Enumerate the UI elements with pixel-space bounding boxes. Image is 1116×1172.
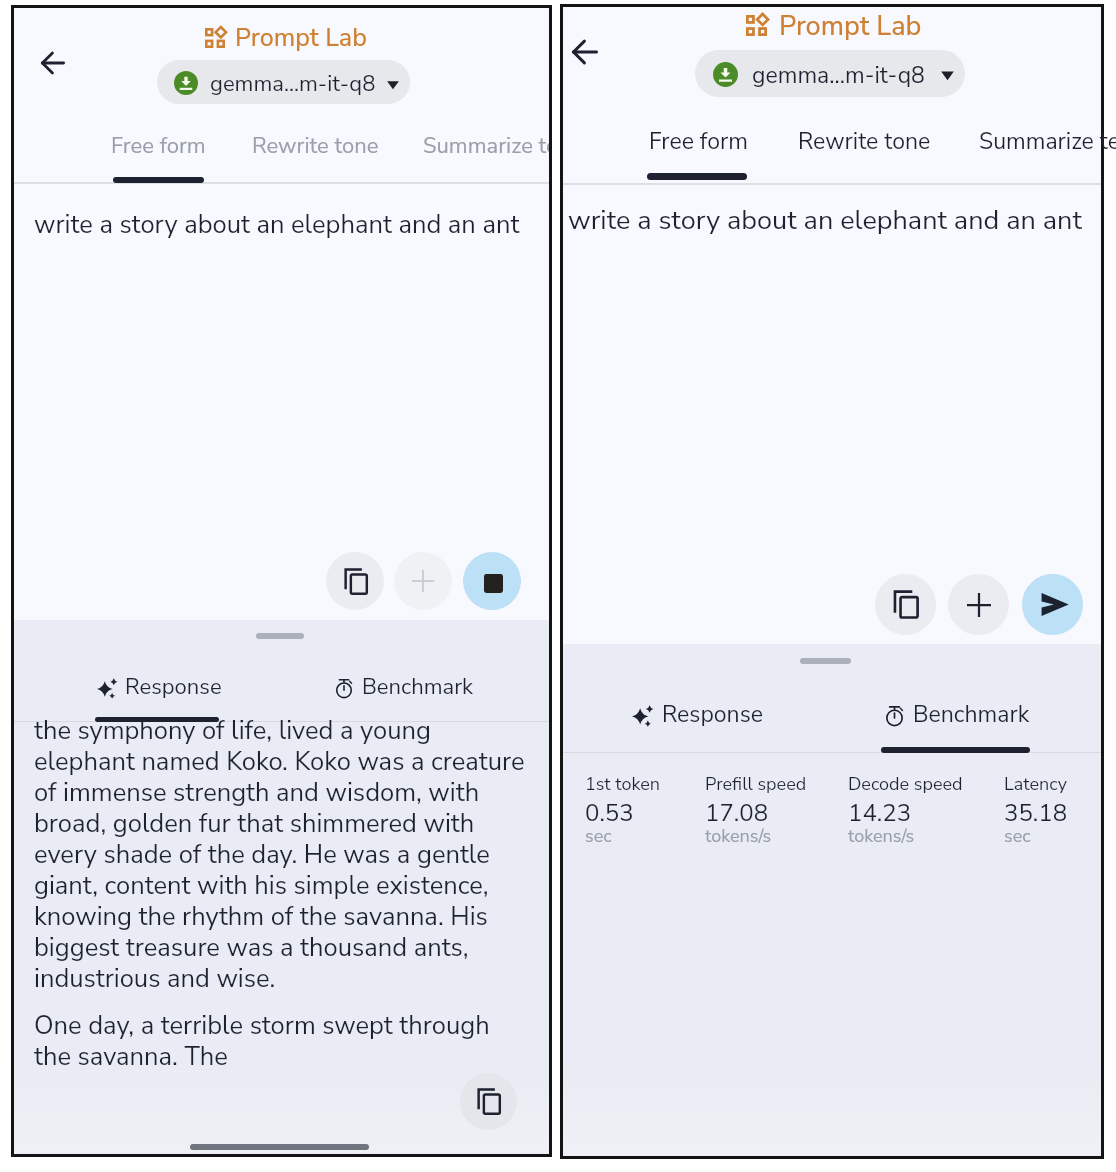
staticText: Summarize text <box>423 131 549 161</box>
staticText: Prefill speed <box>705 772 807 797</box>
button[interactable]: Benchmark tab <box>884 699 1030 730</box>
staticText: tokens/s <box>848 824 915 849</box>
button[interactable]: Summarize text <box>421 125 549 167</box>
staticText: 35.18 <box>1004 797 1068 830</box>
button[interactable]: Response tab <box>632 699 763 730</box>
staticText: Latency <box>1004 772 1067 797</box>
button[interactable] <box>695 50 965 97</box>
button[interactable]: Send <box>1022 574 1083 635</box>
staticText: Prompt Lab <box>235 21 367 55</box>
staticText: 1st token <box>585 772 661 797</box>
staticText: 17.08 <box>705 797 769 830</box>
button[interactable]: Stop <box>463 552 521 610</box>
staticText: sec <box>585 824 612 849</box>
staticText: Free form <box>111 131 206 161</box>
staticText: gemma...m-it-q8 <box>752 60 925 91</box>
staticText: gemma...m-it-q8 <box>210 69 376 99</box>
button[interactable]: Back <box>563 30 607 74</box>
button[interactable]: Add <box>394 552 452 610</box>
staticText: sec <box>1004 824 1031 849</box>
staticText: Response <box>125 672 222 702</box>
button[interactable]: Rewrite tone <box>250 125 381 167</box>
button[interactable]: Back <box>31 41 75 85</box>
button[interactable]: Rewrite tone <box>796 120 933 163</box>
staticText: Rewrite tone <box>798 126 931 157</box>
staticText: Decode speed <box>848 772 963 797</box>
button[interactable]: Copy prompt <box>875 574 936 635</box>
staticText: Response <box>662 699 763 730</box>
staticText: Free form <box>649 126 748 157</box>
button[interactable]: Free form <box>647 120 750 163</box>
staticText: Prompt Lab <box>779 8 922 45</box>
button[interactable]: Add <box>948 574 1009 635</box>
staticText: Benchmark <box>913 699 1030 730</box>
button[interactable]: Free form <box>109 125 208 167</box>
button[interactable]: Benchmark tab <box>334 672 474 702</box>
staticText: 14.23 <box>848 797 912 830</box>
button[interactable]: Copy response <box>460 1073 517 1130</box>
staticText: Benchmark <box>362 672 474 702</box>
staticText: write a story about an elephant and an a… <box>568 206 1082 237</box>
button[interactable]: Response tab <box>97 672 222 702</box>
staticText: One day, a terrible storm swept through … <box>34 1011 514 1073</box>
button[interactable]: Summarize text <box>977 120 1116 163</box>
button[interactable]: Copy prompt <box>326 552 384 610</box>
staticText: 0.53 <box>585 797 634 830</box>
staticText: Summarize text <box>979 126 1116 157</box>
staticText: the symphony of life, lived a young elep… <box>34 716 534 995</box>
button[interactable] <box>157 60 410 104</box>
staticText: write a story about an elephant and an a… <box>34 210 520 241</box>
staticText: tokens/s <box>705 824 772 849</box>
staticText: Rewrite tone <box>252 131 379 161</box>
